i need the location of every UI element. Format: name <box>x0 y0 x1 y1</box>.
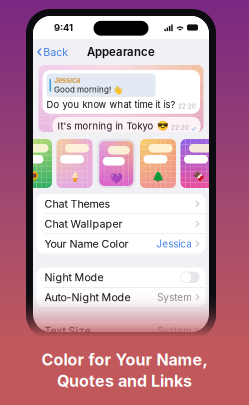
staticText: Back <box>43 45 68 58</box>
button[interactable]: Chat Themes <box>36 194 205 213</box>
staticText: It's morning in Tokyo 😎 <box>57 120 168 132</box>
button[interactable]: Back <box>33 41 68 62</box>
staticText: 22:20 <box>178 103 196 110</box>
staticText: Chat Themes <box>44 197 110 210</box>
button[interactable]: 🌲 <box>140 139 176 188</box>
staticText: Your Name Color <box>44 237 128 250</box>
button[interactable]: Text Size <box>36 321 205 340</box>
staticText: Appearance <box>87 45 155 59</box>
staticText: Night Mode <box>44 271 103 284</box>
staticText: System <box>157 325 192 337</box>
staticText: 🍦 <box>68 170 80 182</box>
button[interactable]: Chat Wallpaper <box>36 214 205 233</box>
staticText: 🍫 <box>192 170 204 182</box>
staticText: Do you know what time it is? <box>46 99 175 110</box>
staticText: Quotes and Links <box>57 371 192 391</box>
button[interactable]: 💜 <box>97 139 135 188</box>
staticText: 💜 <box>110 172 122 184</box>
button[interactable]: Auto-Night Mode <box>36 287 205 307</box>
button[interactable]: Your Name Color <box>36 234 205 253</box>
staticText: Jessica <box>54 76 80 85</box>
button[interactable]: Night Mode <box>36 267 205 287</box>
staticText: 9:41 <box>54 22 73 33</box>
button[interactable]: 🌻 <box>16 139 52 188</box>
staticText: 🌲 <box>152 170 164 182</box>
staticText: Jessica <box>156 238 192 250</box>
staticText: Color for Your Name, <box>41 350 207 369</box>
staticText: Good morning! 👋 <box>54 85 123 95</box>
staticText: Text Size <box>44 324 90 337</box>
staticText: 🌻 <box>28 170 40 182</box>
button[interactable]: 🍫 <box>180 139 216 188</box>
button[interactable]: 🍦 <box>56 139 92 188</box>
staticText: System <box>157 291 192 303</box>
staticText: Auto-Night Mode <box>44 291 130 304</box>
staticText: 22:20 <box>171 124 189 131</box>
staticText: Chat Wallpaper <box>44 217 122 230</box>
